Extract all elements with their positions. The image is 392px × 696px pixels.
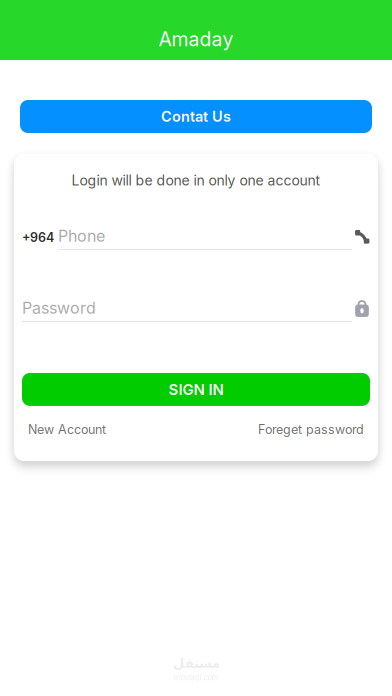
staticText: +964 (22, 230, 54, 245)
staticText: mostaql.com (173, 673, 218, 682)
staticText: Password (22, 298, 96, 318)
staticText: Foreget password (258, 422, 364, 437)
staticText: Contat Us (161, 108, 231, 125)
staticText: SIGN IN (168, 380, 223, 398)
staticText: مستقل (172, 656, 219, 671)
button[interactable]: Contat Us (20, 100, 372, 133)
staticText: Phone (58, 226, 105, 246)
button[interactable]: SIGN IN (22, 373, 370, 406)
button[interactable]: New Account (28, 422, 106, 437)
staticText: Amaday (158, 27, 233, 51)
staticText: New Account (28, 422, 106, 437)
button[interactable]: Foreget password (258, 422, 364, 437)
staticText: Login will be done in only one account (71, 172, 320, 189)
